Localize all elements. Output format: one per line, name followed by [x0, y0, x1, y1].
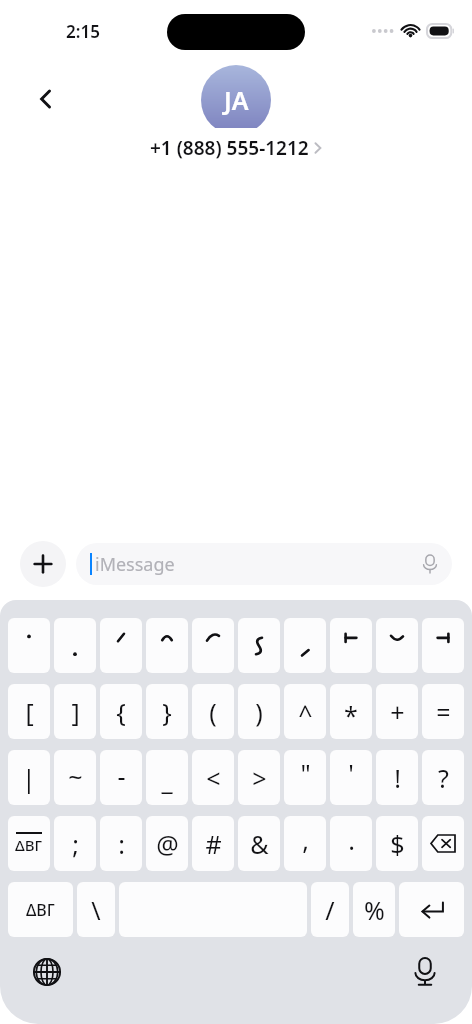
button[interactable]: ] — [54, 684, 96, 739]
button[interactable]: dot above — [8, 618, 50, 673]
button[interactable]: { — [100, 684, 142, 739]
button[interactable]: Change language — [24, 949, 70, 995]
staticText: . — [348, 823, 355, 857]
button[interactable]: $ — [376, 816, 418, 871]
button[interactable]: = — [422, 684, 464, 739]
staticText: * — [344, 698, 358, 732]
staticText: ) — [255, 695, 263, 729]
button[interactable]: ~ — [54, 750, 96, 805]
button[interactable]: > — [238, 750, 280, 805]
button[interactable]: % — [353, 882, 395, 937]
staticText: { — [116, 695, 126, 729]
button[interactable]: # — [192, 816, 234, 871]
button[interactable]: ^ — [284, 684, 326, 739]
button[interactable]: Dictation — [402, 949, 448, 995]
staticText: iMessage — [95, 552, 175, 577]
staticText: [ — [25, 695, 34, 729]
staticText: ~ — [68, 759, 83, 793]
button[interactable]: Add attachment — [20, 541, 66, 587]
staticText: +1 (888) 555-1212 — [150, 135, 309, 161]
button[interactable]: . — [330, 816, 372, 871]
button[interactable]: < — [192, 750, 234, 805]
staticText: # — [205, 827, 222, 861]
staticText: / — [325, 893, 335, 927]
staticText: ΔΒΓ — [15, 835, 43, 855]
staticText: ^ — [298, 697, 313, 731]
staticText: _ — [161, 763, 173, 797]
button[interactable]: macron left — [330, 618, 372, 673]
button[interactable]: - — [100, 750, 142, 805]
staticText: ; — [72, 827, 79, 861]
staticText: } — [162, 695, 172, 729]
button[interactable]: & — [238, 816, 280, 871]
staticText: ? — [438, 761, 449, 795]
staticText: - — [117, 759, 126, 793]
button[interactable]: +1 (888) 555-1212 — [134, 128, 338, 168]
button[interactable]: Backspace — [422, 816, 464, 871]
button[interactable]: macron curve — [376, 618, 418, 673]
button[interactable]: ; — [54, 816, 96, 871]
button[interactable]: } — [146, 684, 188, 739]
staticText: 2:15 — [66, 20, 100, 43]
staticText: ΔΒΓ — [26, 899, 55, 921]
button[interactable]: JA — [201, 65, 271, 135]
button[interactable]: Return — [399, 882, 464, 937]
staticText: " — [300, 756, 311, 790]
button[interactable]: , — [284, 816, 326, 871]
button[interactable]: ? — [422, 750, 464, 805]
button[interactable]: Back — [18, 71, 74, 127]
staticText: ' — [348, 756, 354, 790]
staticText: = — [436, 695, 451, 729]
button[interactable]: iMessage — [76, 543, 452, 585]
button[interactable]: : — [100, 816, 142, 871]
button[interactable]: * — [330, 684, 372, 739]
button[interactable]: ) — [238, 684, 280, 739]
staticText: + — [390, 695, 405, 729]
staticText: @ — [156, 827, 179, 861]
staticText: : — [118, 827, 125, 861]
staticText: % — [364, 893, 385, 927]
staticText: ( — [209, 695, 217, 729]
button[interactable]: ( — [192, 684, 234, 739]
staticText: ! — [394, 761, 401, 795]
button[interactable]: " — [284, 750, 326, 805]
button[interactable]: \ — [77, 882, 115, 937]
button[interactable]: @ — [146, 816, 188, 871]
button[interactable]: + — [376, 684, 418, 739]
button[interactable]: Shift — [8, 816, 50, 871]
staticText: , — [302, 823, 309, 857]
staticText: | — [22, 761, 36, 795]
staticText: & — [250, 827, 269, 861]
staticText: > — [252, 761, 267, 795]
staticText: JA — [224, 83, 249, 117]
button[interactable]: ' — [330, 750, 372, 805]
button[interactable]: [ — [8, 684, 50, 739]
button[interactable]: / — [311, 882, 349, 937]
button[interactable]: circumflex — [146, 618, 188, 673]
button[interactable]: ! — [376, 750, 418, 805]
button[interactable]: macron right — [422, 618, 464, 673]
staticText: < — [206, 761, 221, 795]
staticText: \ — [91, 893, 101, 927]
button[interactable]: | — [8, 750, 50, 805]
button[interactable]: dot below — [54, 618, 96, 673]
button[interactable]: comma below — [284, 618, 326, 673]
staticText: ] — [71, 695, 80, 729]
button[interactable]: breve — [192, 618, 234, 673]
button[interactable]: Switch alphabet — [8, 882, 73, 937]
button[interactable]: _ — [146, 750, 188, 805]
staticText: $ — [390, 827, 405, 861]
button[interactable]: ogonek — [238, 618, 280, 673]
button[interactable]: acute — [100, 618, 142, 673]
